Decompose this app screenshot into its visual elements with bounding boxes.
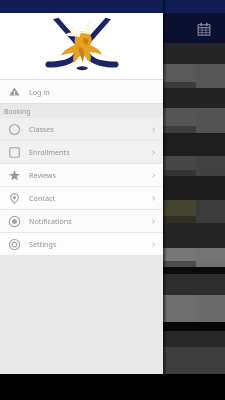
button[interactable]: Contact bbox=[0, 187, 163, 209]
staticText: Log in bbox=[29, 87, 50, 97]
staticText: Reviews bbox=[29, 170, 56, 180]
staticText: Booking bbox=[4, 107, 31, 116]
button[interactable]: Notifications bbox=[0, 210, 163, 232]
staticText: Enrollments bbox=[29, 147, 70, 157]
staticText: Settings bbox=[29, 239, 57, 249]
button[interactable]: Calendar bbox=[193, 18, 214, 39]
button[interactable]: Reviews bbox=[0, 164, 163, 186]
staticText: Notifications bbox=[29, 216, 72, 226]
button[interactable]: Classes bbox=[0, 118, 163, 140]
button[interactable]: Enrollments bbox=[0, 141, 163, 163]
button[interactable]: Log in bbox=[0, 80, 163, 103]
button[interactable]: Settings bbox=[0, 233, 163, 255]
staticText: Contact bbox=[29, 193, 56, 203]
staticText: Classes bbox=[29, 124, 54, 134]
